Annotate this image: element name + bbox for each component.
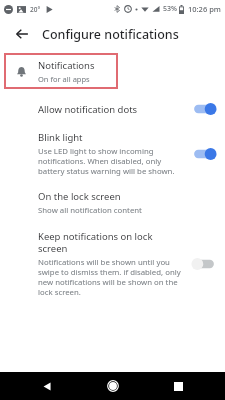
button[interactable]: Back bbox=[8, 20, 36, 48]
staticText: Notifications will be shown until you sw… bbox=[38, 257, 183, 297]
button[interactable]: On bbox=[191, 101, 217, 117]
staticText: 20° bbox=[30, 5, 41, 14]
staticText: On for all apps bbox=[38, 74, 90, 84]
button[interactable]: Keep notifications on lock screen bbox=[0, 223, 225, 304]
staticText: Show all notification content bbox=[38, 205, 142, 216]
staticText: Configure notifications bbox=[42, 26, 179, 43]
button[interactable]: Notifications bbox=[4, 53, 118, 89]
staticText: Allow notification dots bbox=[38, 103, 138, 116]
staticText: Use LED light to show incoming notificat… bbox=[38, 146, 183, 176]
button[interactable]: Home bbox=[95, 372, 131, 400]
staticText: On the lock screen bbox=[38, 190, 121, 203]
staticText: Keep notifications on lock screen bbox=[38, 230, 183, 255]
staticText: 10:26 pm bbox=[188, 4, 221, 14]
button[interactable]: On the lock screen bbox=[0, 183, 225, 223]
button[interactable]: Blink light bbox=[0, 124, 225, 183]
button[interactable]: Off bbox=[191, 256, 217, 272]
button[interactable]: Allow notification dots bbox=[0, 94, 225, 124]
button[interactable]: Back bbox=[29, 372, 65, 400]
staticText: Blink light bbox=[38, 131, 83, 144]
staticText: 53% bbox=[163, 4, 177, 14]
button[interactable]: On bbox=[191, 146, 217, 162]
button[interactable]: Recent apps bbox=[160, 372, 196, 400]
staticText: Notifications bbox=[38, 59, 95, 72]
